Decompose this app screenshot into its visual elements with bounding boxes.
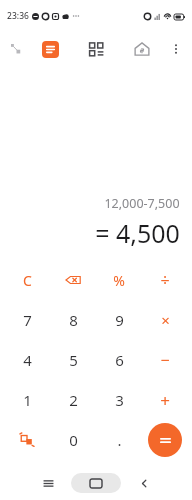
staticText: 3 bbox=[115, 390, 124, 410]
staticText: 2 bbox=[69, 390, 78, 410]
button[interactable]: Recents bbox=[35, 470, 61, 496]
staticText: 0 bbox=[69, 430, 78, 450]
button[interactable]: 8 bbox=[50, 300, 96, 340]
button[interactable]: ÷ bbox=[142, 260, 188, 300]
button[interactable]: 4 bbox=[4, 340, 50, 380]
staticText: 1 bbox=[23, 390, 32, 410]
button[interactable]: More options bbox=[164, 37, 188, 61]
staticText: . bbox=[117, 430, 122, 450]
button[interactable]: 5 bbox=[50, 340, 96, 380]
button[interactable]: Mortgage calculator bbox=[128, 35, 156, 63]
staticText: 23:36 bbox=[7, 10, 29, 22]
button[interactable]: Back bbox=[131, 470, 157, 496]
staticText: ÷ bbox=[160, 269, 170, 291]
staticText: % bbox=[113, 271, 125, 290]
staticText: + bbox=[160, 389, 170, 412]
staticText: 7 bbox=[23, 310, 32, 330]
button[interactable]: 2 bbox=[50, 380, 96, 420]
button[interactable]: Scientific mode bbox=[4, 37, 28, 61]
staticText: C bbox=[23, 271, 32, 290]
button[interactable]: Home bbox=[71, 473, 121, 493]
button[interactable]: 1 bbox=[4, 380, 50, 420]
staticText: 12,000-7,500 bbox=[104, 195, 180, 212]
staticText: 5 bbox=[69, 350, 78, 370]
staticText: 6 bbox=[115, 350, 124, 370]
staticText: 9 bbox=[115, 310, 124, 330]
button[interactable]: . bbox=[96, 420, 142, 460]
button[interactable]: Equals bbox=[142, 420, 188, 460]
button[interactable]: Backspace bbox=[50, 260, 96, 300]
button[interactable]: More functions bbox=[4, 420, 50, 460]
button[interactable]: 3 bbox=[96, 380, 142, 420]
button[interactable]: 0 bbox=[50, 420, 96, 460]
staticText: − bbox=[160, 349, 170, 371]
button[interactable]: 6 bbox=[96, 340, 142, 380]
button[interactable]: × bbox=[142, 300, 188, 340]
button[interactable]: − bbox=[142, 340, 188, 380]
button[interactable]: C bbox=[4, 260, 50, 300]
button[interactable]: 7 bbox=[4, 300, 50, 340]
button[interactable]: + bbox=[142, 380, 188, 420]
staticText: = 4,500 bbox=[95, 216, 180, 250]
button[interactable]: 9 bbox=[96, 300, 142, 340]
button[interactable]: % bbox=[96, 260, 142, 300]
button[interactable]: Unit converter bbox=[82, 35, 110, 63]
button[interactable]: Calculator bbox=[36, 35, 64, 63]
staticText: 8 bbox=[69, 310, 78, 330]
staticText: 4 bbox=[23, 350, 32, 370]
staticText: × bbox=[161, 310, 170, 330]
